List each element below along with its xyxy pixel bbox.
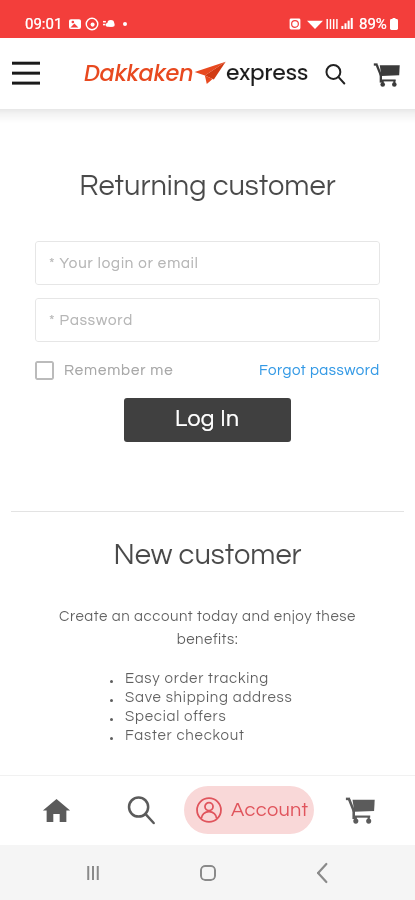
- button[interactable]: Forgot password: [259, 363, 380, 378]
- staticText: Dakkaken: [84, 57, 194, 88]
- button[interactable]: * Password: [35, 298, 380, 342]
- button[interactable]: Back: [300, 851, 344, 895]
- staticText: Log In: [175, 407, 240, 431]
- staticText: * Your login or email: [49, 256, 199, 271]
- button[interactable]: Shopping cart: [335, 785, 385, 835]
- staticText: Special offers: [125, 709, 227, 724]
- staticText: Remember me: [64, 363, 174, 378]
- staticText: * Password: [49, 313, 134, 328]
- staticText: Returning customer: [0, 171, 415, 201]
- staticText: 09:01: [25, 15, 63, 33]
- button[interactable]: Log In: [124, 398, 291, 442]
- staticText: Create an account today and enjoy these …: [50, 609, 365, 647]
- staticText: Save shipping address: [125, 690, 293, 705]
- staticText: Account: [231, 800, 309, 821]
- staticText: Faster checkout: [125, 728, 245, 743]
- staticText: New customer: [0, 540, 415, 570]
- staticText: 89%: [359, 15, 387, 33]
- button[interactable]: Home: [31, 785, 81, 835]
- button[interactable]: Account: [184, 786, 314, 834]
- staticText: Easy order tracking: [125, 671, 270, 686]
- button[interactable]: Search: [116, 785, 166, 835]
- button[interactable]: Menu: [12, 62, 40, 86]
- button[interactable]: Recent apps: [71, 851, 115, 895]
- button[interactable]: Home: [186, 851, 230, 895]
- staticText: express: [226, 57, 309, 88]
- button[interactable]: * Your login or email: [35, 241, 380, 285]
- button[interactable]: Search: [314, 53, 356, 95]
- button[interactable]: Remember me: [35, 361, 174, 380]
- button[interactable]: Shopping cart: [365, 53, 407, 95]
